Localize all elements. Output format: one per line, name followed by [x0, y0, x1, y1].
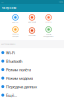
staticText: Ещё... — [6, 92, 17, 98]
staticText: и акции — [12, 36, 18, 37]
button[interactable]: Ещё... — [0, 91, 64, 99]
staticText: Режим полёта — [6, 67, 31, 72]
button[interactable]: Режим модема — [0, 74, 64, 82]
staticText: 100% — [59, 1, 63, 3]
button[interactable]: Передача данных — [0, 82, 64, 91]
staticText: Режим модема — [6, 75, 33, 81]
staticText: Настройки — [2, 6, 17, 10]
staticText: Бонусы — [12, 33, 18, 35]
staticText: Bluetooth — [6, 58, 22, 64]
staticText: Wi-Fi — [6, 50, 15, 55]
staticText: 9:41 — [1, 1, 4, 3]
button[interactable]: Бонусы — [7, 27, 24, 38]
staticText: Мой тариф — [28, 21, 36, 23]
button[interactable]: Услуги — [40, 14, 57, 23]
button[interactable]: Wi-Fi — [0, 48, 64, 57]
button[interactable]: Bluetooth — [0, 57, 64, 65]
staticText: Передача данных — [6, 84, 37, 89]
staticText: и поддержка — [44, 36, 54, 37]
button[interactable]: Мой счёт — [7, 14, 24, 23]
staticText: Услуги — [46, 21, 52, 23]
button[interactable]: Мой тариф — [24, 14, 40, 23]
staticText: Мой счёт — [12, 21, 19, 23]
staticText: Платежи — [28, 34, 35, 36]
staticText: Помощь — [46, 33, 52, 35]
button[interactable]: Платежи — [24, 28, 40, 36]
button[interactable]: Помощь — [40, 27, 57, 38]
staticText: НАСТРОЙКИ СВЯЗИ — [1, 43, 15, 45]
button[interactable]: Режим полёта — [0, 65, 64, 74]
